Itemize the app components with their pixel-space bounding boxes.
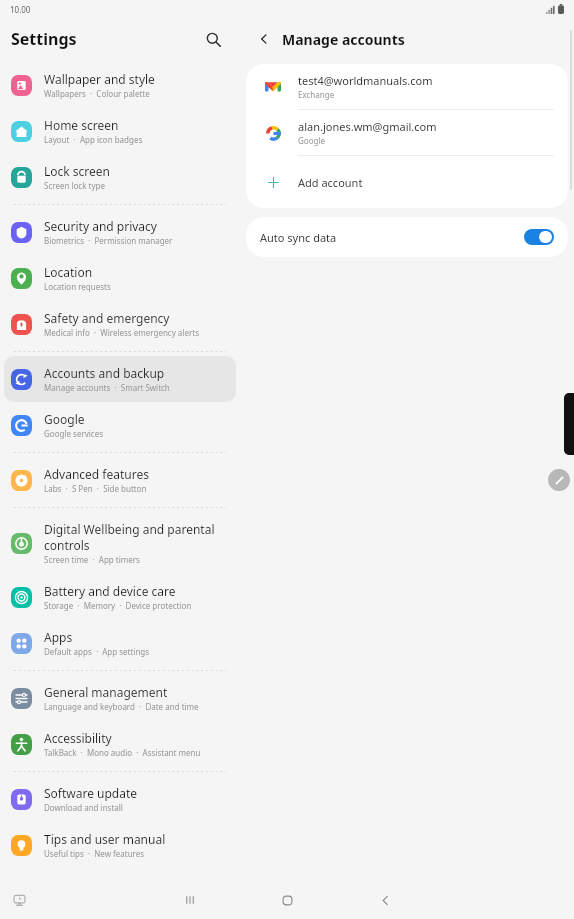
staticText: Security and privacy <box>44 218 157 234</box>
staticText: Layout · App icon badges <box>44 134 143 145</box>
staticText: Biometrics · Permission manager <box>44 235 173 246</box>
button[interactable]: Wallpaper and style <box>4 62 236 108</box>
button[interactable]: Advanced features <box>4 457 236 503</box>
staticText: Location <box>44 264 93 280</box>
staticText: Medical info · Wireless emergency alerts <box>44 327 199 338</box>
staticText: Home screen <box>44 117 119 133</box>
staticText: Location requests <box>44 281 111 292</box>
staticText: Language and keyboard · Date and time <box>44 701 199 712</box>
button[interactable]: Google <box>4 402 236 448</box>
staticText: Settings <box>11 28 77 50</box>
staticText: Tips and user manual <box>44 831 166 847</box>
staticText: Wallpapers · Colour palette <box>44 88 150 99</box>
staticText: Google <box>298 135 325 146</box>
button[interactable]: Edit <box>548 469 570 491</box>
button[interactable]: Edge panel <box>564 393 574 455</box>
staticText: Accessibility <box>44 730 112 746</box>
button[interactable]: Digital Wellbeing and parental controls <box>4 512 236 574</box>
button[interactable]: Recents <box>173 883 207 917</box>
staticText: General management <box>44 684 168 700</box>
staticText: Screen time · App timers <box>44 554 140 565</box>
button[interactable]: Back <box>252 27 276 51</box>
staticText: Battery and device care <box>44 583 176 599</box>
staticText: Wallpaper and style <box>44 71 155 87</box>
button[interactable]: Tips and user manual <box>4 822 236 868</box>
button[interactable]: Home <box>270 883 304 917</box>
button[interactable]: Accounts and backup <box>4 356 236 402</box>
staticText: Safety and emergency <box>44 310 170 326</box>
staticText: Auto sync data <box>260 230 337 245</box>
staticText: Storage · Memory · Device protection <box>44 600 192 611</box>
staticText: Software update <box>44 785 138 801</box>
staticText: Lock screen <box>44 163 111 179</box>
button[interactable]: Screenshot <box>8 889 30 911</box>
button[interactable]: Safety and emergency <box>4 301 236 347</box>
staticText: Useful tips · New features <box>44 848 145 859</box>
button[interactable]: alan.jones.wm@gmail.com <box>246 110 568 155</box>
staticText: Apps <box>44 629 73 645</box>
staticText: Exchange <box>298 89 335 100</box>
button[interactable]: Accessibility <box>4 721 236 767</box>
button[interactable]: Auto sync data <box>246 217 568 257</box>
staticText: Google services <box>44 428 104 439</box>
button[interactable]: Battery and device care <box>4 574 236 620</box>
staticText: test4@worldmanuals.com <box>298 73 433 88</box>
button[interactable]: Security and privacy <box>4 209 236 255</box>
staticText: Google <box>44 411 85 427</box>
staticText: TalkBack · Mono audio · Assistant menu <box>44 747 201 758</box>
staticText: Digital Wellbeing and parental controls <box>44 521 226 553</box>
staticText: Default apps · App settings <box>44 646 150 657</box>
button[interactable]: General management <box>4 675 236 721</box>
staticText: Labs · S Pen · Side button <box>44 483 147 494</box>
button[interactable]: Back <box>368 883 402 917</box>
button[interactable]: Search <box>200 26 226 52</box>
button[interactable]: Add account <box>246 156 568 208</box>
button[interactable]: Home screen <box>4 108 236 154</box>
button[interactable]: Software update <box>4 776 236 822</box>
staticText: Download and install <box>44 802 123 813</box>
staticText: Screen lock type <box>44 180 105 191</box>
staticText: Manage accounts · Smart Switch <box>44 382 170 393</box>
staticText: Add account <box>298 175 363 190</box>
staticText: alan.jones.wm@gmail.com <box>298 119 437 134</box>
staticText: Manage accounts <box>282 30 405 49</box>
staticText: 10.00 <box>10 4 31 15</box>
button[interactable]: Location <box>4 255 236 301</box>
button[interactable]: test4@worldmanuals.com <box>246 64 568 109</box>
button[interactable]: Apps <box>4 620 236 666</box>
button[interactable]: Lock screen <box>4 154 236 200</box>
staticText: Advanced features <box>44 466 149 482</box>
staticText: Accounts and backup <box>44 365 165 381</box>
